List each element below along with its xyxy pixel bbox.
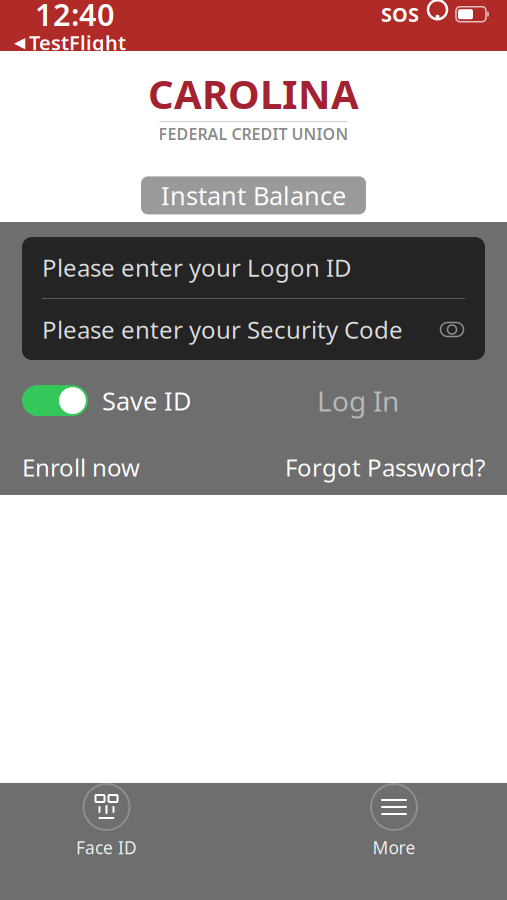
staticText: CAROLINA xyxy=(148,67,359,120)
button[interactable]: Please enter your Security Code xyxy=(22,299,485,360)
staticText: Enroll now xyxy=(22,451,140,483)
staticText: 12:40 xyxy=(35,0,115,35)
button[interactable]: Face ID xyxy=(76,784,137,859)
staticText: More xyxy=(372,836,415,859)
staticText: ◀ xyxy=(14,34,25,51)
staticText: Forgot Password? xyxy=(285,451,485,483)
button[interactable]: Instant Balance xyxy=(141,176,366,214)
button[interactable]: Enroll now xyxy=(22,451,140,483)
staticText: SOS xyxy=(381,1,419,27)
staticText: Save ID xyxy=(102,384,191,417)
staticText: Face ID xyxy=(76,836,137,859)
staticText: Instant Balance xyxy=(161,178,346,212)
staticText: FEDERAL CREDIT UNION xyxy=(158,123,348,144)
button[interactable]: Please enter your Logon ID xyxy=(22,237,485,298)
button[interactable]: Log In xyxy=(317,382,485,419)
staticText: Log In xyxy=(317,382,399,419)
staticText: TestFlight xyxy=(29,29,126,56)
button[interactable]: Forgot Password? xyxy=(285,451,485,483)
staticText: Please enter your Security Code xyxy=(42,314,403,345)
button[interactable]: Save ID xyxy=(22,384,191,417)
button[interactable]: More xyxy=(371,784,417,859)
staticText: Please enter your Logon ID xyxy=(42,252,352,283)
